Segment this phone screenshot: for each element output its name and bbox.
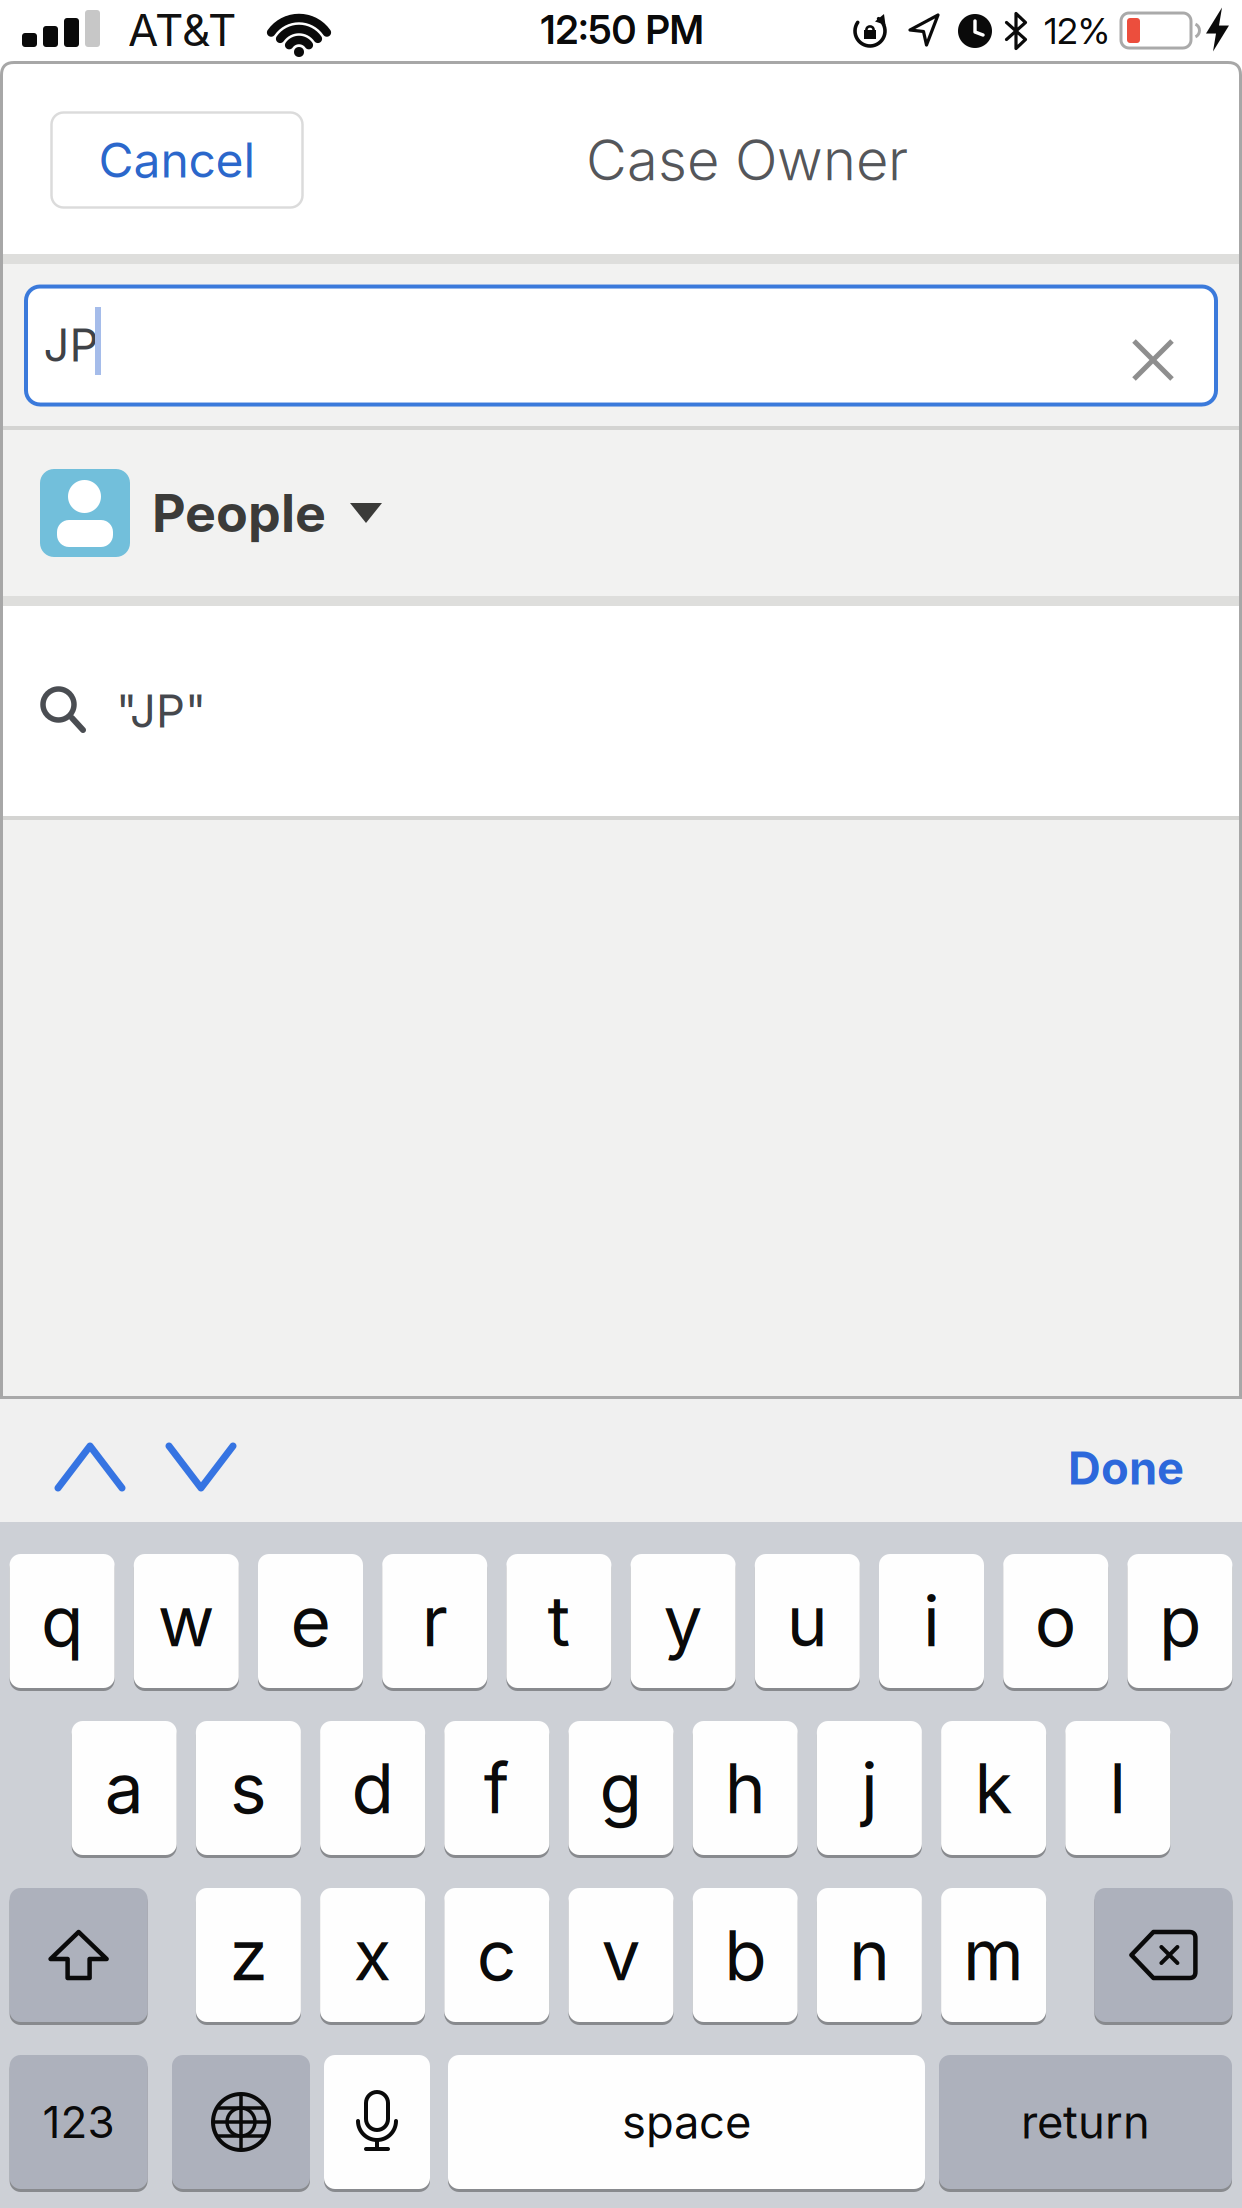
- staticText: g: [599, 1747, 642, 1829]
- staticText: y: [664, 1580, 703, 1662]
- button[interactable]: 123: [10, 2055, 148, 2189]
- button[interactable]: q: [10, 1554, 115, 1688]
- button[interactable]: r: [382, 1554, 487, 1688]
- button[interactable]: f: [444, 1721, 549, 1855]
- button[interactable]: t: [506, 1554, 611, 1688]
- staticText: m: [963, 1914, 1024, 1996]
- button[interactable]: return: [939, 2055, 1232, 2189]
- button[interactable]: x: [320, 1888, 425, 2022]
- staticText: u: [787, 1580, 828, 1662]
- button[interactable]: s: [196, 1721, 301, 1855]
- staticText: space: [622, 2095, 751, 2149]
- button[interactable]: c: [444, 1888, 549, 2022]
- staticText: 12:50 PM: [540, 7, 703, 53]
- staticText: Case Owner: [586, 127, 908, 193]
- button[interactable]: v: [568, 1888, 673, 2022]
- staticText: b: [724, 1914, 766, 1996]
- button[interactable]: b: [693, 1888, 798, 2022]
- staticText: r: [422, 1580, 448, 1662]
- staticText: JP: [43, 318, 98, 372]
- button[interactable]: [1094, 1888, 1232, 2022]
- button[interactable]: i: [879, 1554, 984, 1688]
- button[interactable]: w: [134, 1554, 239, 1688]
- button[interactable]: u: [755, 1554, 860, 1688]
- staticText: Done: [1068, 1441, 1184, 1495]
- button[interactable]: People: [0, 430, 1242, 596]
- button[interactable]: e: [258, 1554, 363, 1688]
- staticText: Cancel: [98, 132, 255, 188]
- button[interactable]: a: [72, 1721, 177, 1855]
- staticText: w: [158, 1580, 215, 1662]
- staticText: i: [923, 1580, 940, 1662]
- button[interactable]: j: [817, 1721, 922, 1855]
- button[interactable]: h: [693, 1721, 798, 1855]
- staticText: c: [477, 1914, 517, 1996]
- staticText: v: [601, 1914, 640, 1996]
- button[interactable]: k: [941, 1721, 1046, 1855]
- button[interactable]: Cancel: [51, 112, 302, 207]
- staticText: return: [1021, 2095, 1150, 2149]
- button[interactable]: [172, 2055, 310, 2189]
- button[interactable]: d: [320, 1721, 425, 1855]
- button[interactable]: [1134, 341, 1172, 379]
- button[interactable]: z: [196, 1888, 301, 2022]
- staticText: q: [41, 1580, 83, 1662]
- button[interactable]: l: [1065, 1721, 1170, 1855]
- staticText: p: [1159, 1580, 1201, 1662]
- staticText: 123: [43, 2096, 115, 2148]
- button[interactable]: [169, 1446, 233, 1490]
- staticText: l: [1109, 1747, 1126, 1829]
- button[interactable]: [10, 1888, 148, 2022]
- staticText: k: [975, 1747, 1013, 1829]
- staticText: n: [849, 1914, 890, 1996]
- button[interactable]: "JP": [0, 606, 1242, 816]
- staticText: j: [861, 1747, 878, 1829]
- staticText: h: [725, 1747, 766, 1829]
- staticText: 12%: [1044, 10, 1110, 52]
- staticText: x: [354, 1914, 392, 1996]
- button[interactable]: m: [941, 1888, 1046, 2022]
- button[interactable]: [26, 286, 1216, 404]
- staticText: o: [1035, 1580, 1077, 1662]
- staticText: "JP": [116, 684, 206, 738]
- button[interactable]: g: [568, 1721, 673, 1855]
- button[interactable]: p: [1127, 1554, 1232, 1688]
- staticText: a: [105, 1747, 144, 1829]
- button[interactable]: n: [817, 1888, 922, 2022]
- button[interactable]: [58, 1446, 122, 1490]
- staticText: z: [229, 1914, 267, 1996]
- button[interactable]: y: [631, 1554, 736, 1688]
- button[interactable]: Done: [1068, 1441, 1184, 1495]
- staticText: t: [547, 1580, 570, 1662]
- button[interactable]: [324, 2055, 430, 2189]
- button[interactable]: space: [448, 2055, 925, 2189]
- staticText: f: [484, 1747, 510, 1829]
- staticText: d: [352, 1747, 394, 1829]
- button[interactable]: o: [1003, 1554, 1108, 1688]
- staticText: e: [290, 1580, 330, 1662]
- staticText: AT&T: [128, 4, 236, 56]
- staticText: People: [152, 482, 326, 544]
- staticText: s: [230, 1747, 267, 1829]
